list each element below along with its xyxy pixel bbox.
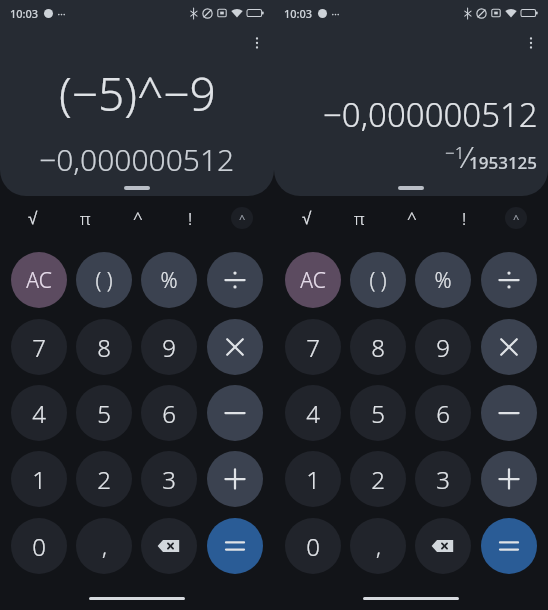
staticText: % bbox=[160, 266, 178, 295]
staticText: 4 bbox=[306, 397, 320, 430]
staticText: ( ) bbox=[369, 266, 387, 295]
button[interactable]: Divide bbox=[481, 252, 537, 308]
staticText: AC bbox=[300, 266, 326, 295]
staticText: ^ bbox=[407, 207, 417, 230]
staticText: ^ bbox=[133, 207, 143, 230]
staticText: 4 bbox=[32, 397, 46, 430]
button[interactable]: √ bbox=[280, 196, 333, 240]
staticText: ^ bbox=[513, 211, 520, 226]
button[interactable]: 9 bbox=[415, 319, 471, 375]
staticText: AC bbox=[26, 266, 52, 295]
staticText: ⁄ bbox=[465, 136, 469, 177]
staticText: 2 bbox=[371, 463, 385, 496]
staticText: 3 bbox=[436, 463, 450, 496]
staticText: 8 bbox=[371, 331, 385, 364]
button[interactable]: % bbox=[415, 252, 471, 308]
button[interactable]: Multiply bbox=[207, 319, 263, 375]
button[interactable]: 4 bbox=[11, 385, 67, 441]
staticText: , bbox=[102, 531, 107, 561]
button[interactable]: More options bbox=[240, 26, 274, 60]
staticText: −0,000000512 bbox=[39, 139, 235, 180]
button[interactable]: 3 bbox=[415, 451, 471, 507]
button[interactable]: Backspace bbox=[141, 518, 197, 574]
button[interactable]: Minus bbox=[481, 385, 537, 441]
button[interactable]: 7 bbox=[285, 319, 341, 375]
staticText: (−5)^−9 bbox=[59, 62, 216, 125]
button[interactable]: Plus bbox=[481, 451, 537, 507]
staticText: π bbox=[354, 207, 365, 230]
button[interactable]: 3 bbox=[141, 451, 197, 507]
staticText: 5 bbox=[371, 397, 385, 430]
button[interactable]: 8 bbox=[350, 319, 406, 375]
button[interactable]: % bbox=[141, 252, 197, 308]
button[interactable]: More options bbox=[514, 26, 548, 60]
staticText: 9 bbox=[162, 331, 176, 364]
button[interactable]: 7 bbox=[11, 319, 67, 375]
staticText: 9 bbox=[436, 331, 450, 364]
staticText: 7 bbox=[32, 331, 46, 364]
button[interactable]: 8 bbox=[76, 319, 132, 375]
button[interactable]: ! bbox=[438, 196, 490, 240]
button[interactable]: 5 bbox=[76, 385, 132, 441]
button[interactable]: ! bbox=[164, 196, 216, 240]
button[interactable]: 5 bbox=[350, 385, 406, 441]
button[interactable]: Equals bbox=[207, 518, 263, 574]
button[interactable]: π bbox=[333, 196, 386, 240]
button[interactable]: 1 bbox=[11, 451, 67, 507]
staticText: 0 bbox=[306, 530, 320, 563]
button[interactable]: 2 bbox=[350, 451, 406, 507]
staticText: 10:03 bbox=[284, 6, 313, 21]
button[interactable]: ^ bbox=[386, 196, 438, 240]
staticText: 8 bbox=[97, 331, 111, 364]
button[interactable]: Divide bbox=[207, 252, 263, 308]
staticText: % bbox=[434, 266, 452, 295]
staticText: ! bbox=[188, 207, 193, 230]
button[interactable]: 6 bbox=[141, 385, 197, 441]
button[interactable]: Collapse bbox=[505, 207, 527, 229]
button[interactable]: 6 bbox=[415, 385, 471, 441]
staticText: 6 bbox=[436, 397, 450, 430]
staticText: ( ) bbox=[95, 266, 113, 295]
button[interactable]: AC bbox=[11, 252, 67, 308]
button[interactable]: AC bbox=[285, 252, 341, 308]
button[interactable]: Plus bbox=[207, 451, 263, 507]
staticText: ^ bbox=[239, 211, 246, 226]
staticText: √ bbox=[28, 209, 38, 228]
button[interactable]: 2 bbox=[76, 451, 132, 507]
staticText: 5 bbox=[97, 397, 111, 430]
staticText: 2 bbox=[97, 463, 111, 496]
button[interactable]: ( ) bbox=[76, 252, 132, 308]
staticText: 1 bbox=[32, 463, 46, 496]
button[interactable]: 1 bbox=[285, 451, 341, 507]
staticText: √ bbox=[302, 209, 312, 228]
staticText: 7 bbox=[306, 331, 320, 364]
button[interactable]: Equals bbox=[481, 518, 537, 574]
button[interactable]: , bbox=[350, 518, 406, 574]
staticText: −1 bbox=[445, 141, 465, 164]
button[interactable]: 4 bbox=[285, 385, 341, 441]
staticText: 6 bbox=[162, 397, 176, 430]
button[interactable]: π bbox=[59, 196, 112, 240]
staticText: 10:03 bbox=[10, 6, 39, 21]
staticText: 0 bbox=[32, 530, 46, 563]
staticText: ! bbox=[462, 207, 467, 230]
button[interactable]: , bbox=[76, 518, 132, 574]
button[interactable]: Multiply bbox=[481, 319, 537, 375]
staticText: 1953125 bbox=[469, 151, 538, 174]
button[interactable]: √ bbox=[6, 196, 59, 240]
staticText: 1 bbox=[306, 463, 320, 496]
button[interactable]: 9 bbox=[141, 319, 197, 375]
staticText: , bbox=[376, 531, 381, 561]
button[interactable]: Backspace bbox=[415, 518, 471, 574]
button[interactable]: Minus bbox=[207, 385, 263, 441]
button[interactable]: 0 bbox=[11, 518, 67, 574]
staticText: 3 bbox=[162, 463, 176, 496]
staticText: −0,000000512 bbox=[323, 92, 538, 137]
button[interactable]: ^ bbox=[112, 196, 164, 240]
button[interactable]: Collapse bbox=[231, 207, 253, 229]
staticText: π bbox=[80, 207, 91, 230]
button[interactable]: ( ) bbox=[350, 252, 406, 308]
button[interactable]: 0 bbox=[285, 518, 341, 574]
